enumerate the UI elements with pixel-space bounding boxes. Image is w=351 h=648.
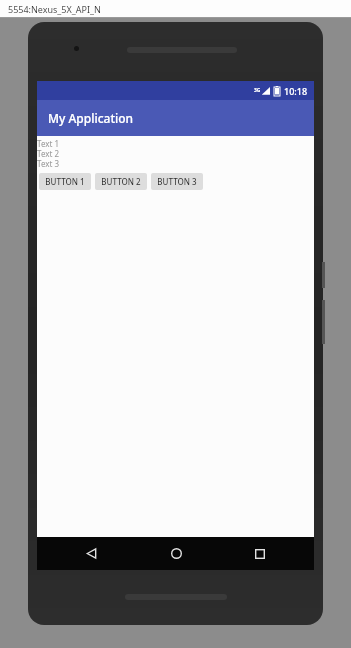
staticText: My Application [48, 110, 134, 126]
staticText: 10:18 [284, 85, 308, 97]
staticText: Text 3 [37, 158, 60, 168]
button[interactable]: Recent apps [230, 537, 290, 570]
staticText: BUTTON 1 [45, 176, 85, 187]
button[interactable]: BUTTON 1 [39, 173, 91, 190]
button[interactable]: Back [61, 537, 121, 570]
staticText: 3G [254, 87, 261, 94]
button[interactable]: BUTTON 3 [151, 173, 203, 190]
button[interactable]: Text 3 [37, 158, 314, 168]
staticText: BUTTON 2 [101, 176, 141, 187]
button[interactable]: BUTTON 2 [95, 173, 147, 190]
staticText: Text 2 [37, 148, 60, 158]
button[interactable]: Text 1 [37, 138, 314, 148]
staticText: BUTTON 3 [157, 176, 197, 187]
staticText: 5554:Nexus_5X_API_N [8, 3, 101, 15]
staticText: Text 1 [37, 138, 60, 148]
button[interactable]: Home [146, 537, 206, 570]
button[interactable]: Text 2 [37, 148, 314, 158]
